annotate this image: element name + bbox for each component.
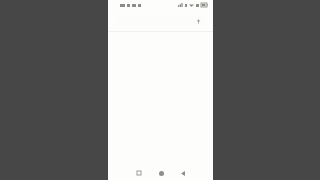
button[interactable]: Voice search	[196, 19, 201, 24]
button[interactable]: Home	[154, 166, 168, 180]
button[interactable]: Back	[176, 166, 190, 180]
button[interactable]: Voice search	[117, 17, 204, 26]
button[interactable]: Recents	[132, 166, 146, 180]
